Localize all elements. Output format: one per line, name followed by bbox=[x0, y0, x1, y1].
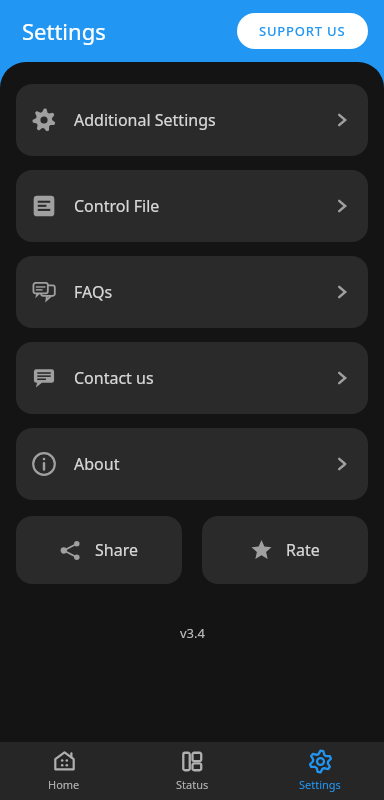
staticText: Home bbox=[48, 777, 80, 792]
staticText: FAQs bbox=[74, 281, 113, 303]
staticText: SUPPORT US bbox=[259, 22, 346, 40]
staticText: Share bbox=[95, 539, 138, 561]
staticText: Contact us bbox=[74, 367, 154, 389]
other: Share bbox=[60, 540, 81, 561]
staticText: About bbox=[74, 453, 120, 475]
button[interactable]: About bbox=[16, 428, 368, 500]
other: Status bbox=[181, 750, 204, 773]
staticText: v3.4 bbox=[180, 624, 205, 642]
other: Control File bbox=[32, 194, 56, 218]
other: Contact us bbox=[32, 366, 56, 390]
staticText: Additional Settings bbox=[74, 109, 216, 131]
button[interactable]: Contact us bbox=[16, 342, 368, 414]
button[interactable]: Status bbox=[128, 742, 256, 800]
staticText: Control File bbox=[74, 195, 160, 217]
staticText: Settings bbox=[299, 777, 341, 792]
button[interactable]: Rate bbox=[202, 516, 368, 584]
button[interactable]: Home bbox=[0, 742, 128, 800]
staticText: Rate bbox=[286, 539, 320, 561]
other: Additional Settings bbox=[32, 108, 56, 132]
button[interactable]: Control File bbox=[16, 170, 368, 242]
other: About bbox=[32, 452, 56, 476]
other: Rate bbox=[251, 540, 272, 561]
button[interactable]: SUPPORT US bbox=[237, 13, 368, 49]
button[interactable]: Additional Settings bbox=[16, 84, 368, 156]
other: FAQs bbox=[32, 280, 56, 304]
button[interactable]: Share bbox=[16, 516, 182, 584]
other: Settings bbox=[309, 750, 332, 773]
button[interactable]: Settings bbox=[256, 742, 384, 800]
other: Home bbox=[53, 750, 76, 773]
button[interactable]: FAQs bbox=[16, 256, 368, 328]
staticText: Status bbox=[176, 777, 209, 792]
staticText: Settings bbox=[22, 16, 106, 46]
